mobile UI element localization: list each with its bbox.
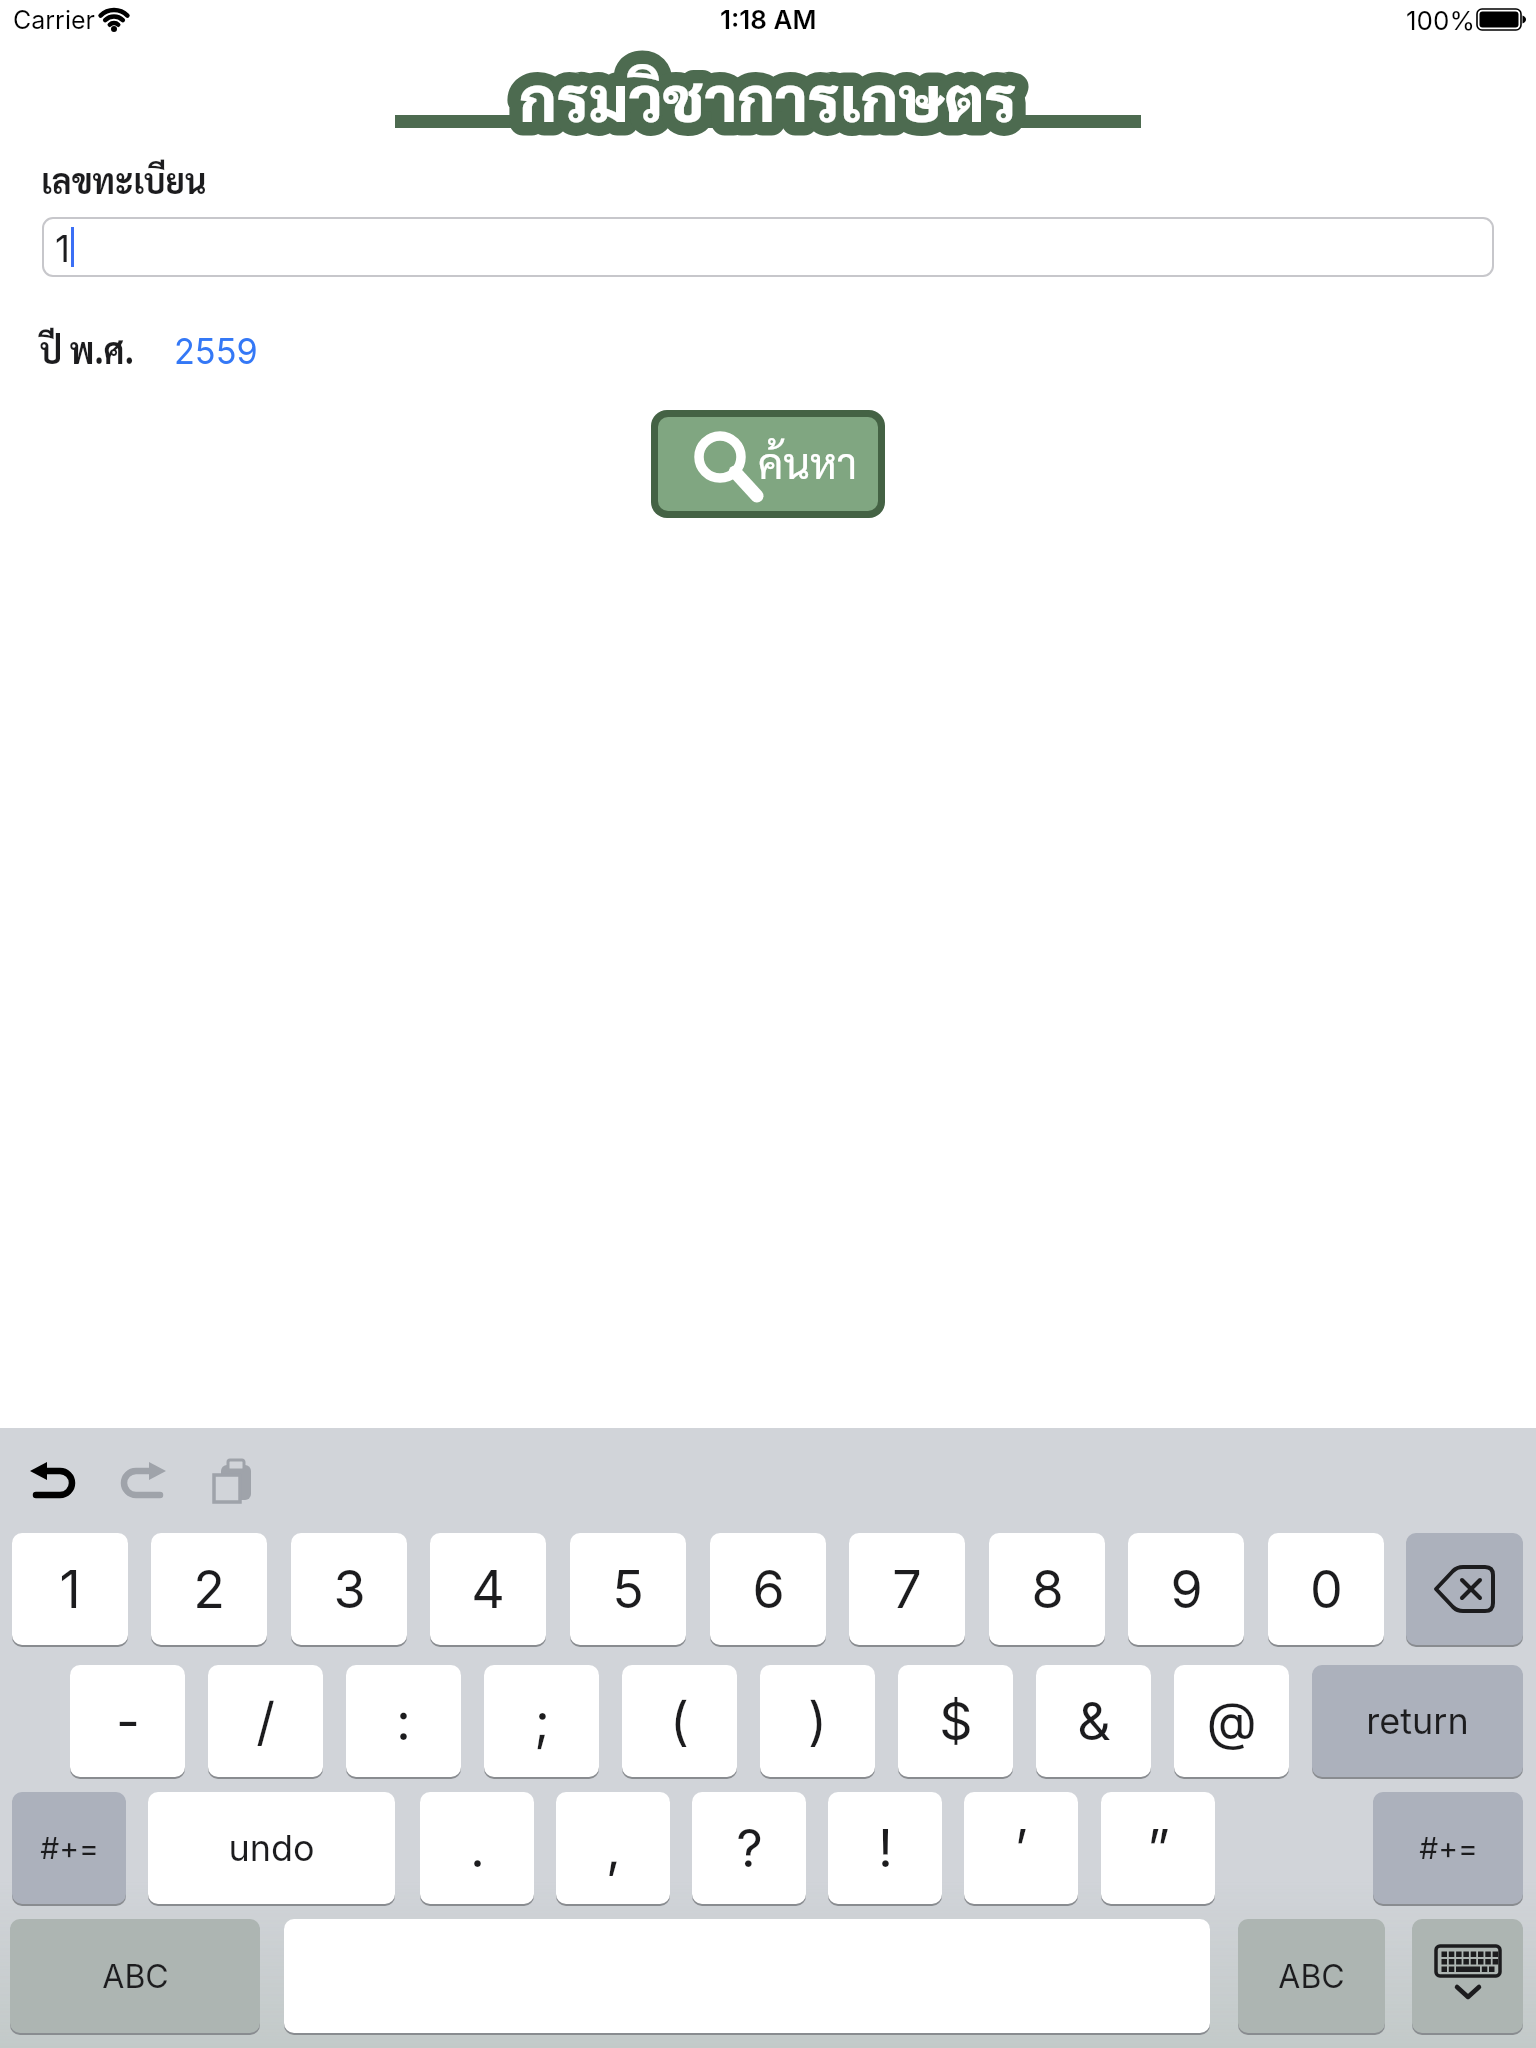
staticText: 5 — [612, 1558, 644, 1621]
staticText: ค้นหา — [758, 434, 858, 489]
button[interactable]: - — [70, 1665, 185, 1777]
staticText: 100% — [1406, 5, 1475, 36]
staticText: ABC — [1278, 1957, 1345, 1996]
button[interactable]: ค้นหา — [651, 410, 885, 518]
button[interactable]: 7 — [849, 1533, 965, 1645]
button[interactable]: 2559 — [0, 0, 89, 44]
button[interactable]: 5 — [570, 1533, 686, 1645]
button[interactable]: 6 — [710, 1533, 826, 1645]
button[interactable]: 3 — [291, 1533, 407, 1645]
button[interactable]: . — [420, 1792, 534, 1904]
button[interactable]: #+= — [12, 1792, 126, 1904]
button[interactable]: 9 — [1128, 1533, 1244, 1645]
staticText: 6 — [752, 1558, 785, 1621]
staticText: ปี พ.ศ. — [40, 323, 135, 372]
button[interactable]: ( — [622, 1665, 737, 1777]
button[interactable] — [1412, 1919, 1523, 2033]
staticText: $ — [939, 1690, 973, 1753]
button[interactable]: & — [1036, 1665, 1151, 1777]
staticText: / — [256, 1690, 275, 1753]
staticText: #+= — [1419, 1830, 1478, 1866]
staticText: 7 — [892, 1558, 922, 1621]
staticText: ( — [670, 1690, 689, 1753]
staticText: ABC — [102, 1957, 169, 1996]
button[interactable]: ) — [760, 1665, 875, 1777]
staticText: ) — [808, 1690, 827, 1753]
staticText: ” — [1147, 1817, 1170, 1880]
button[interactable]: : — [346, 1665, 461, 1777]
button[interactable]: , — [556, 1792, 670, 1904]
button[interactable]: 2 — [151, 1533, 267, 1645]
staticText: . — [470, 1817, 485, 1880]
staticText: 2 — [193, 1558, 225, 1621]
staticText: 3 — [333, 1558, 366, 1621]
staticText: เลขทะเบียน — [41, 156, 207, 203]
staticText: return — [1366, 1699, 1469, 1743]
button[interactable]: 4 — [430, 1533, 546, 1645]
staticText: 1:18 AM — [720, 4, 817, 35]
staticText: ! — [878, 1817, 893, 1880]
staticText: 0 — [1310, 1558, 1343, 1621]
staticText: ? — [736, 1817, 763, 1880]
button[interactable]: ? — [692, 1792, 806, 1904]
button[interactable] — [1406, 1533, 1523, 1645]
staticText: , — [606, 1817, 621, 1880]
button[interactable]: 8 — [989, 1533, 1105, 1645]
button[interactable]: 0 — [1268, 1533, 1384, 1645]
staticText: & — [1077, 1690, 1111, 1753]
button[interactable]: ’ — [964, 1792, 1078, 1904]
staticText: 9 — [1170, 1558, 1203, 1621]
button[interactable]: 1 — [12, 1533, 128, 1645]
staticText: ; — [534, 1690, 550, 1753]
staticText: 4 — [471, 1558, 505, 1621]
button[interactable]: #+= — [1373, 1792, 1523, 1904]
staticText: Carrier — [13, 5, 95, 35]
staticText: กรมวิชาการเกษตร — [519, 55, 1017, 137]
staticText: - — [116, 1690, 140, 1753]
staticText: ’ — [1014, 1817, 1028, 1880]
button[interactable]: $ — [898, 1665, 1013, 1777]
staticText: 8 — [1031, 1558, 1064, 1621]
staticText: 1 — [55, 226, 71, 271]
staticText: undo — [228, 1826, 315, 1870]
button[interactable]: @ — [1174, 1665, 1289, 1777]
staticText: @ — [1206, 1690, 1257, 1753]
button[interactable]: ABC — [1238, 1919, 1385, 2033]
staticText: #+= — [40, 1830, 99, 1866]
button[interactable]: 1 — [42, 217, 1494, 277]
staticText: 1 — [59, 1558, 81, 1621]
button[interactable]: ” — [1101, 1792, 1215, 1904]
button[interactable]: ; — [484, 1665, 599, 1777]
button[interactable]: / — [208, 1665, 323, 1777]
button[interactable]: ! — [828, 1792, 942, 1904]
staticText: กรมวิชาการเกษตร — [519, 55, 1017, 137]
button[interactable]: undo — [148, 1792, 395, 1904]
staticText: : — [396, 1690, 411, 1753]
button[interactable]: ABC — [10, 1919, 260, 2033]
button[interactable]: return — [1312, 1665, 1523, 1777]
